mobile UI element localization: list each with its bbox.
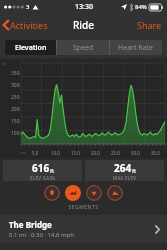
staticText: Heart Rate xyxy=(118,43,154,53)
staticText: Activities xyxy=(10,19,48,31)
staticText: 5.0 xyxy=(32,150,39,156)
staticText: 264 xyxy=(114,161,132,175)
staticText: 84% xyxy=(135,3,147,11)
button[interactable]: Segments xyxy=(65,185,81,201)
button[interactable]: Elevation xyxy=(5,40,56,55)
staticText: 0.1 mi · 0:30 · 14.6 mph xyxy=(9,231,75,239)
button[interactable]: 616 xyxy=(3,160,82,181)
button[interactable]: Activities xyxy=(0,16,54,34)
staticText: SEGMENTS xyxy=(0,204,167,211)
staticText: Ride xyxy=(73,18,94,32)
staticText: Speed xyxy=(73,43,94,53)
staticText: 10.0 xyxy=(51,150,60,156)
staticText: 300 xyxy=(11,82,20,89)
staticText: 13:30 xyxy=(75,2,93,12)
staticText: ELEV GAIN xyxy=(30,175,56,181)
staticText: 250 xyxy=(11,94,20,101)
button[interactable]: Heart xyxy=(86,185,102,201)
button[interactable]: Speed xyxy=(57,40,109,55)
staticText: Share xyxy=(137,19,162,31)
staticText: 30.0 xyxy=(131,150,140,156)
staticText: 616 xyxy=(32,161,50,175)
staticText: mi xyxy=(21,150,26,155)
staticText: 15.0 xyxy=(71,150,80,156)
staticText: Elevation xyxy=(15,43,47,53)
staticText: The Bridge xyxy=(9,219,52,230)
staticText: 200 xyxy=(11,106,20,113)
staticText: ft xyxy=(50,167,55,175)
staticText: MAX ELEV xyxy=(113,175,137,181)
button[interactable]: Mountain xyxy=(107,185,123,201)
staticText: 150 xyxy=(11,118,20,125)
button[interactable]: Map pin xyxy=(44,185,60,201)
button[interactable]: Heart Rate xyxy=(110,40,162,55)
staticText: 350 xyxy=(11,70,20,77)
staticText: ft xyxy=(3,61,6,66)
staticText: 3 xyxy=(26,3,30,11)
staticText: 20.0 xyxy=(91,150,100,156)
staticText: ft xyxy=(132,167,137,175)
button[interactable]: Share xyxy=(132,16,167,34)
button[interactable]: 264 xyxy=(85,160,164,181)
staticText: 25.0 xyxy=(111,150,120,156)
button[interactable]: The Bridge xyxy=(0,215,167,243)
staticText: 100 xyxy=(11,130,20,137)
staticText: 35.0 xyxy=(151,150,160,156)
